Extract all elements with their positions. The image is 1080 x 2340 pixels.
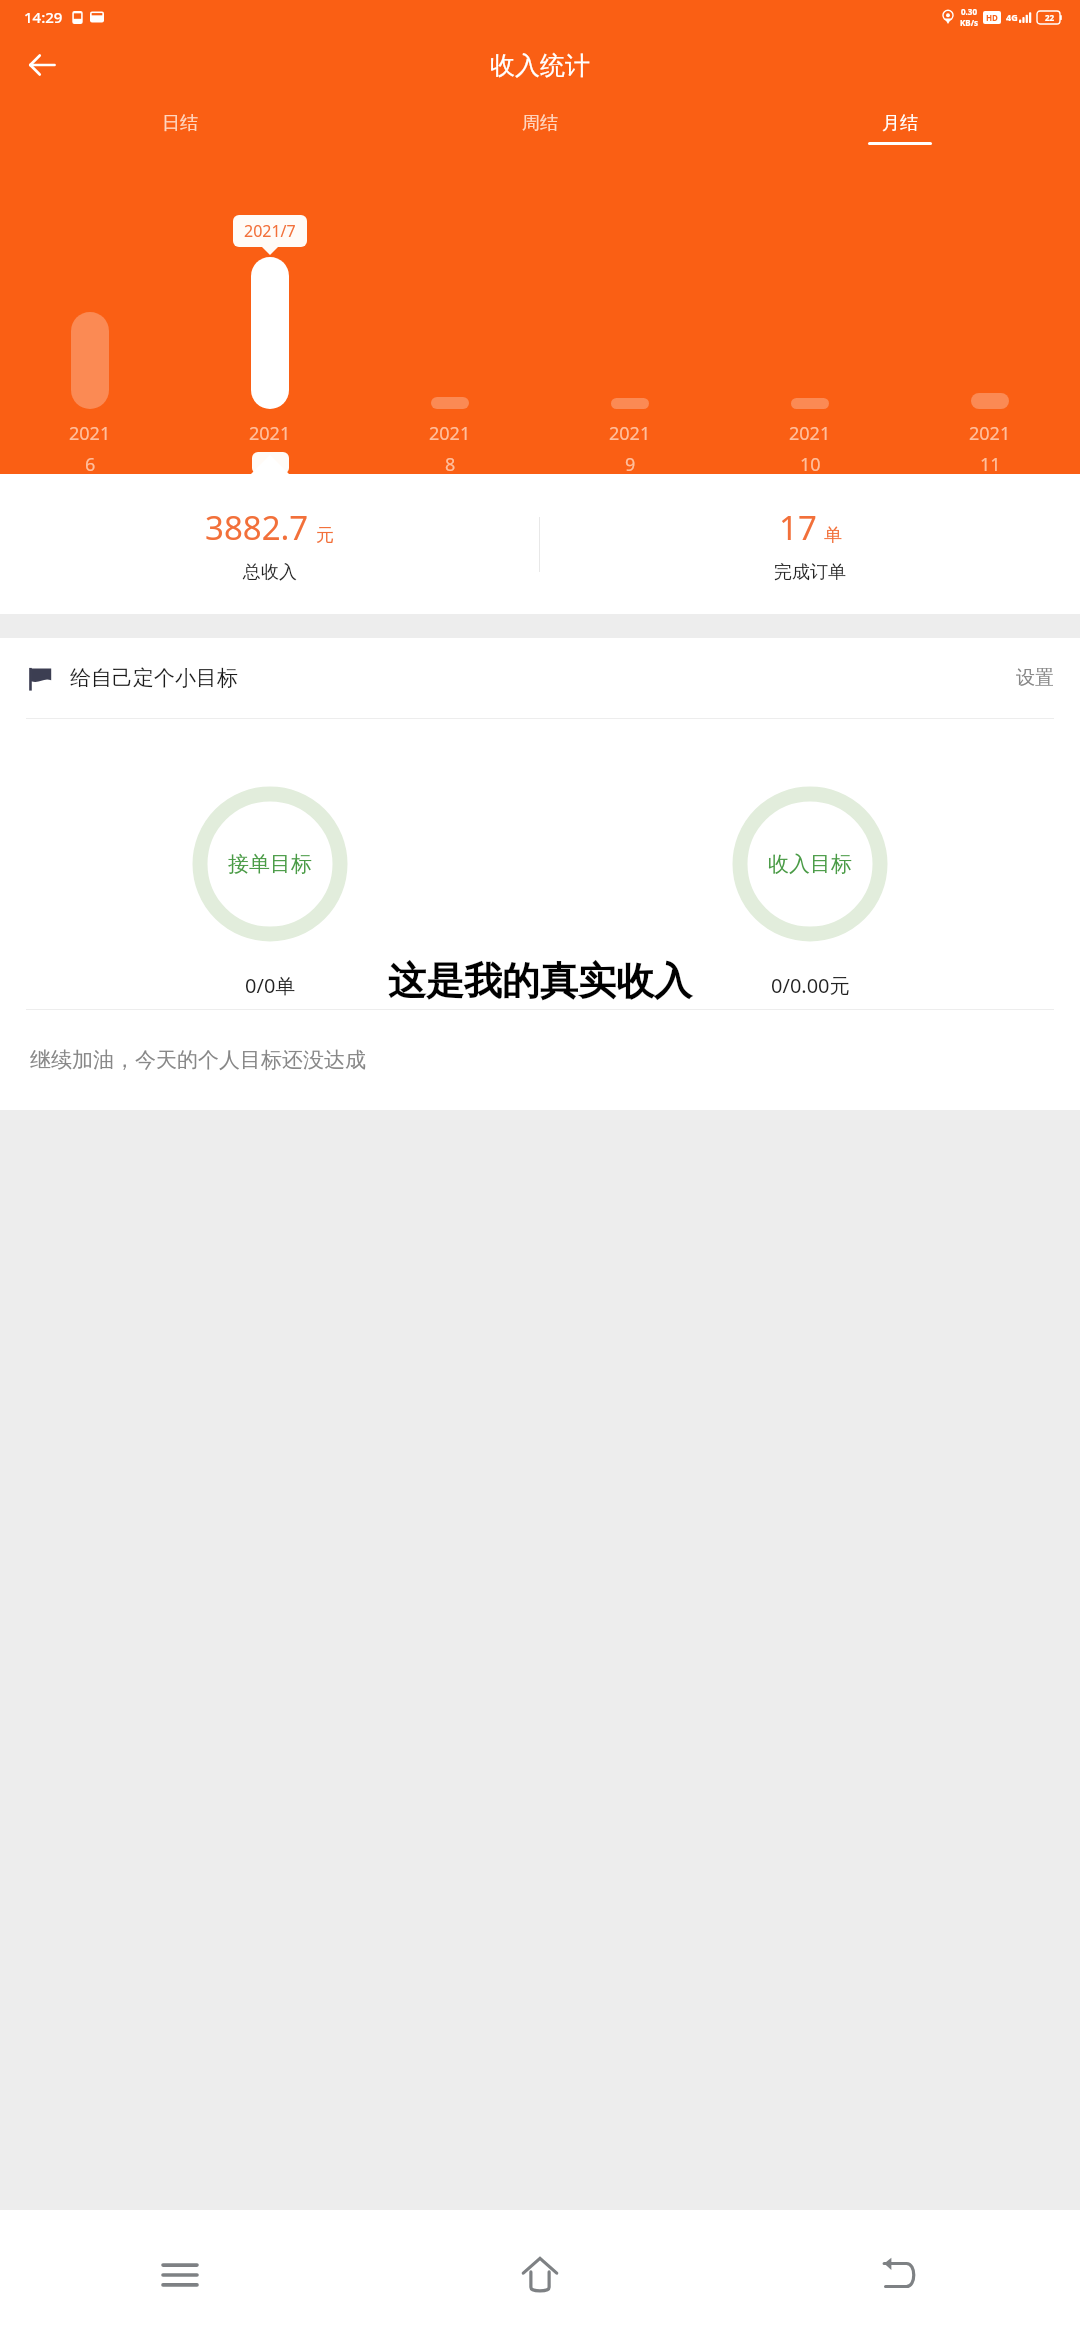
staticText: 这是我的真实收入 xyxy=(388,957,692,1005)
staticText: 4G xyxy=(1006,11,1018,23)
staticText: 10 xyxy=(800,452,821,474)
staticText: 2021 xyxy=(789,421,831,446)
staticText: 22 xyxy=(1045,12,1055,23)
button[interactable]: 周结 xyxy=(360,97,720,159)
staticText: 14:29 xyxy=(24,7,63,27)
staticText: 月结 xyxy=(882,112,918,135)
staticText: 单 xyxy=(824,524,842,547)
staticText: 9 xyxy=(625,452,636,474)
staticText: 6 xyxy=(85,452,96,474)
staticText: 2021 xyxy=(609,421,651,446)
staticText: 元 xyxy=(316,524,334,547)
staticText: 周结 xyxy=(522,112,558,135)
staticText: 2021 xyxy=(249,421,291,446)
staticText: 2021 xyxy=(429,421,471,446)
staticText: 8 xyxy=(445,452,456,474)
staticText: 继续加油，今天的个人目标还没达成 xyxy=(30,1047,366,1073)
staticText: 设置 xyxy=(1016,666,1054,690)
button[interactable]: 月结 xyxy=(720,97,1080,159)
staticText: 日结 xyxy=(162,112,198,135)
staticText: 0/0单 xyxy=(245,972,296,999)
button[interactable]: 日结 xyxy=(0,97,360,159)
staticText: 0/0.00元 xyxy=(771,972,850,999)
staticText: KB/s xyxy=(960,17,978,28)
staticText: 2021 xyxy=(69,421,111,446)
staticText: 2021/7 xyxy=(244,220,296,242)
staticText: 总收入 xyxy=(243,561,297,584)
staticText: 接单目标 xyxy=(228,851,312,877)
staticText: 2021 xyxy=(969,421,1011,446)
staticText: 11 xyxy=(980,452,1001,474)
staticText: 完成订单 xyxy=(774,561,846,584)
staticText: 3882.7 xyxy=(205,505,309,550)
button[interactable]: Back xyxy=(720,2210,1080,2340)
staticText: 7 xyxy=(265,454,276,472)
button[interactable]: Recent apps xyxy=(0,2210,360,2340)
staticText: 给自己定个小目标 xyxy=(70,665,238,691)
staticText: 收入统计 xyxy=(490,50,590,81)
staticText: 收入目标 xyxy=(768,851,852,877)
staticText: HD xyxy=(986,12,998,23)
staticText: 0.30 xyxy=(961,6,977,17)
staticText: 17 xyxy=(779,505,817,550)
button[interactable]: Home xyxy=(360,2210,720,2340)
button[interactable]: Back xyxy=(14,37,70,93)
button[interactable]: 给自己定个小目标 xyxy=(0,638,1080,718)
